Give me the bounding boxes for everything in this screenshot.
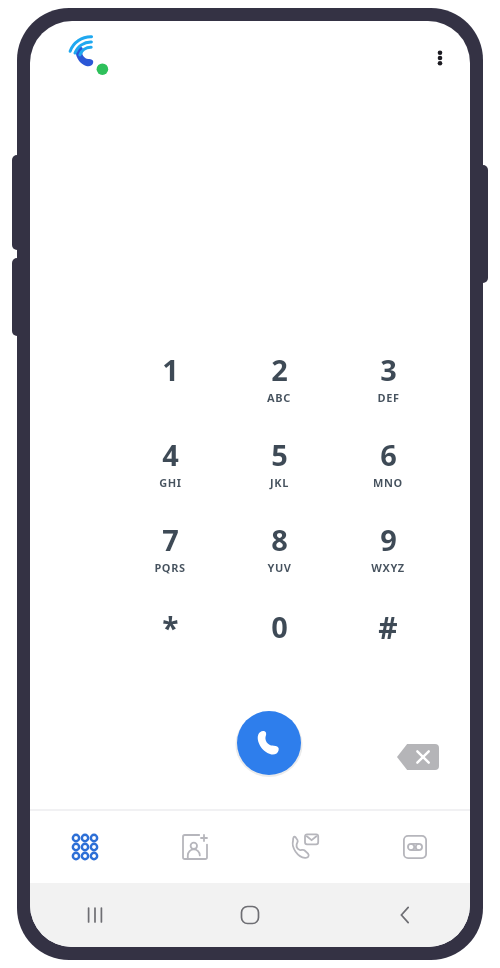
button[interactable]: Dialpad xyxy=(30,811,140,883)
staticText: DEF xyxy=(377,390,400,405)
button[interactable]: Call xyxy=(235,709,303,777)
button[interactable]: 1 xyxy=(126,350,214,420)
staticText: GHI xyxy=(159,475,182,490)
button[interactable]: 3 xyxy=(344,350,432,420)
staticText: * xyxy=(162,607,179,648)
button[interactable]: Add contact xyxy=(140,811,250,883)
staticText: 5 xyxy=(271,435,288,474)
staticText: 8 xyxy=(271,520,288,559)
staticText: ABC xyxy=(267,390,291,405)
staticText: 3 xyxy=(380,350,397,389)
staticText: JKL xyxy=(270,475,289,490)
button[interactable]: 4 xyxy=(126,435,214,505)
button[interactable]: Voicemail xyxy=(360,811,470,883)
button[interactable]: 0 xyxy=(235,607,323,677)
button[interactable]: 5 xyxy=(235,435,323,505)
button[interactable]: 6 xyxy=(344,435,432,505)
staticText: WXYZ xyxy=(371,560,405,575)
staticText: 1 xyxy=(162,350,179,389)
staticText: 4 xyxy=(162,435,179,474)
staticText: 6 xyxy=(380,435,397,474)
staticText: # xyxy=(378,607,398,648)
staticText: 0 xyxy=(271,607,288,646)
button[interactable]: Back xyxy=(382,892,428,938)
button[interactable]: Backspace xyxy=(392,735,444,779)
staticText: PQRS xyxy=(154,560,186,575)
staticText: MNO xyxy=(373,475,403,490)
button[interactable]: 9 xyxy=(344,520,432,590)
button[interactable]: 8 xyxy=(235,520,323,590)
button[interactable]: Recents xyxy=(72,892,118,938)
button[interactable]: Call message xyxy=(250,811,360,883)
button[interactable]: Home xyxy=(227,892,273,938)
button[interactable]: 7 xyxy=(126,520,214,590)
staticText: YUV xyxy=(267,560,292,575)
button[interactable]: * xyxy=(126,607,214,677)
button[interactable]: 2 xyxy=(235,350,323,420)
staticText: 2 xyxy=(271,350,288,389)
staticText: 9 xyxy=(380,520,397,559)
button[interactable]: # xyxy=(344,607,432,677)
button[interactable]: More options xyxy=(418,36,462,80)
button[interactable]: Caller ID app xyxy=(72,38,112,78)
staticText: 7 xyxy=(162,520,179,559)
